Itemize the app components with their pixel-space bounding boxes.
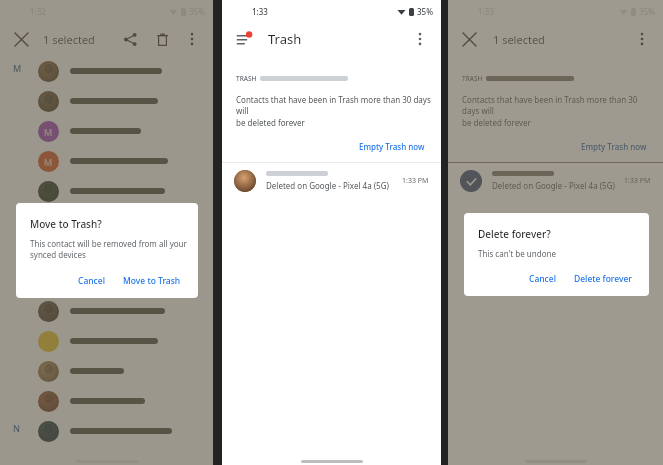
staticText: Contacts that have been in Trash more th… — [236, 94, 431, 129]
staticText: 1:33 PM — [624, 176, 651, 186]
staticText: 1:33 PM — [402, 176, 429, 186]
staticText: Empty Trash now — [581, 141, 647, 152]
staticText: 1:33 — [252, 6, 268, 17]
staticText: M — [44, 126, 53, 138]
staticText: Cancel — [78, 275, 105, 287]
staticText: Delete forever — [574, 273, 632, 285]
button[interactable] — [0, 296, 213, 326]
staticText: Empty Trash now — [359, 141, 425, 152]
staticText: TRASH — [236, 74, 257, 83]
staticText: Deleted on Google - Pixel 4a (5G) — [266, 180, 389, 191]
button[interactable] — [0, 236, 213, 266]
staticText: 1:32 — [30, 6, 46, 17]
button[interactable] — [0, 206, 213, 236]
button[interactable]: Cancel — [522, 268, 563, 290]
button[interactable]: Delete forever — [567, 268, 639, 290]
staticText: This contact will be removed from all yo… — [30, 238, 187, 260]
button[interactable]: Delete — [151, 28, 173, 50]
button[interactable]: Empty Trash now — [353, 137, 431, 156]
button[interactable]: Deleted on Google - Pixel 4a (5G) — [448, 163, 663, 199]
staticText: Deleted on Google - Pixel 4a (5G) — [492, 180, 615, 191]
staticText: 1 selected — [493, 32, 545, 47]
button[interactable] — [0, 56, 213, 86]
button[interactable] — [0, 266, 213, 296]
button[interactable]: Deleted on Google - Pixel 4a (5G) — [222, 163, 441, 199]
staticText: Move to Trash? — [30, 217, 102, 231]
button[interactable] — [0, 356, 213, 386]
staticText: N — [13, 422, 20, 434]
staticText: M — [13, 62, 22, 74]
button[interactable]: M — [0, 116, 213, 146]
button[interactable]: More options — [181, 28, 203, 50]
button[interactable]: Close selection — [10, 28, 32, 50]
button[interactable]: Move to Trash — [116, 270, 188, 292]
staticText: Cancel — [529, 273, 556, 285]
button[interactable] — [0, 86, 213, 116]
button[interactable]: Open navigation drawer — [232, 27, 256, 51]
staticText: TRASH — [462, 74, 483, 83]
button[interactable]: Share — [119, 28, 141, 50]
button[interactable]: Close selection — [458, 28, 480, 50]
staticText: Contacts that have been in Trash more th… — [462, 94, 653, 129]
button[interactable]: M — [0, 146, 213, 176]
button[interactable] — [0, 326, 213, 356]
button[interactable]: Empty Trash now — [575, 137, 653, 156]
staticText: 1 selected — [43, 32, 95, 47]
staticText: Delete forever? — [478, 227, 551, 241]
staticText: 35% — [417, 6, 433, 17]
staticText: M — [44, 156, 53, 168]
button[interactable]: Cancel — [71, 270, 112, 292]
staticText: Move to Trash — [123, 275, 181, 287]
button[interactable] — [0, 386, 213, 416]
button[interactable]: More options — [631, 28, 653, 50]
button[interactable] — [0, 416, 213, 446]
staticText: 1:33 — [478, 6, 494, 17]
staticText: This can't be undone — [478, 248, 556, 259]
staticText: 35% — [189, 6, 205, 17]
button[interactable] — [0, 176, 213, 206]
staticText: 35% — [639, 6, 655, 17]
staticText: Trash — [268, 30, 302, 48]
button[interactable]: More options — [409, 28, 431, 50]
